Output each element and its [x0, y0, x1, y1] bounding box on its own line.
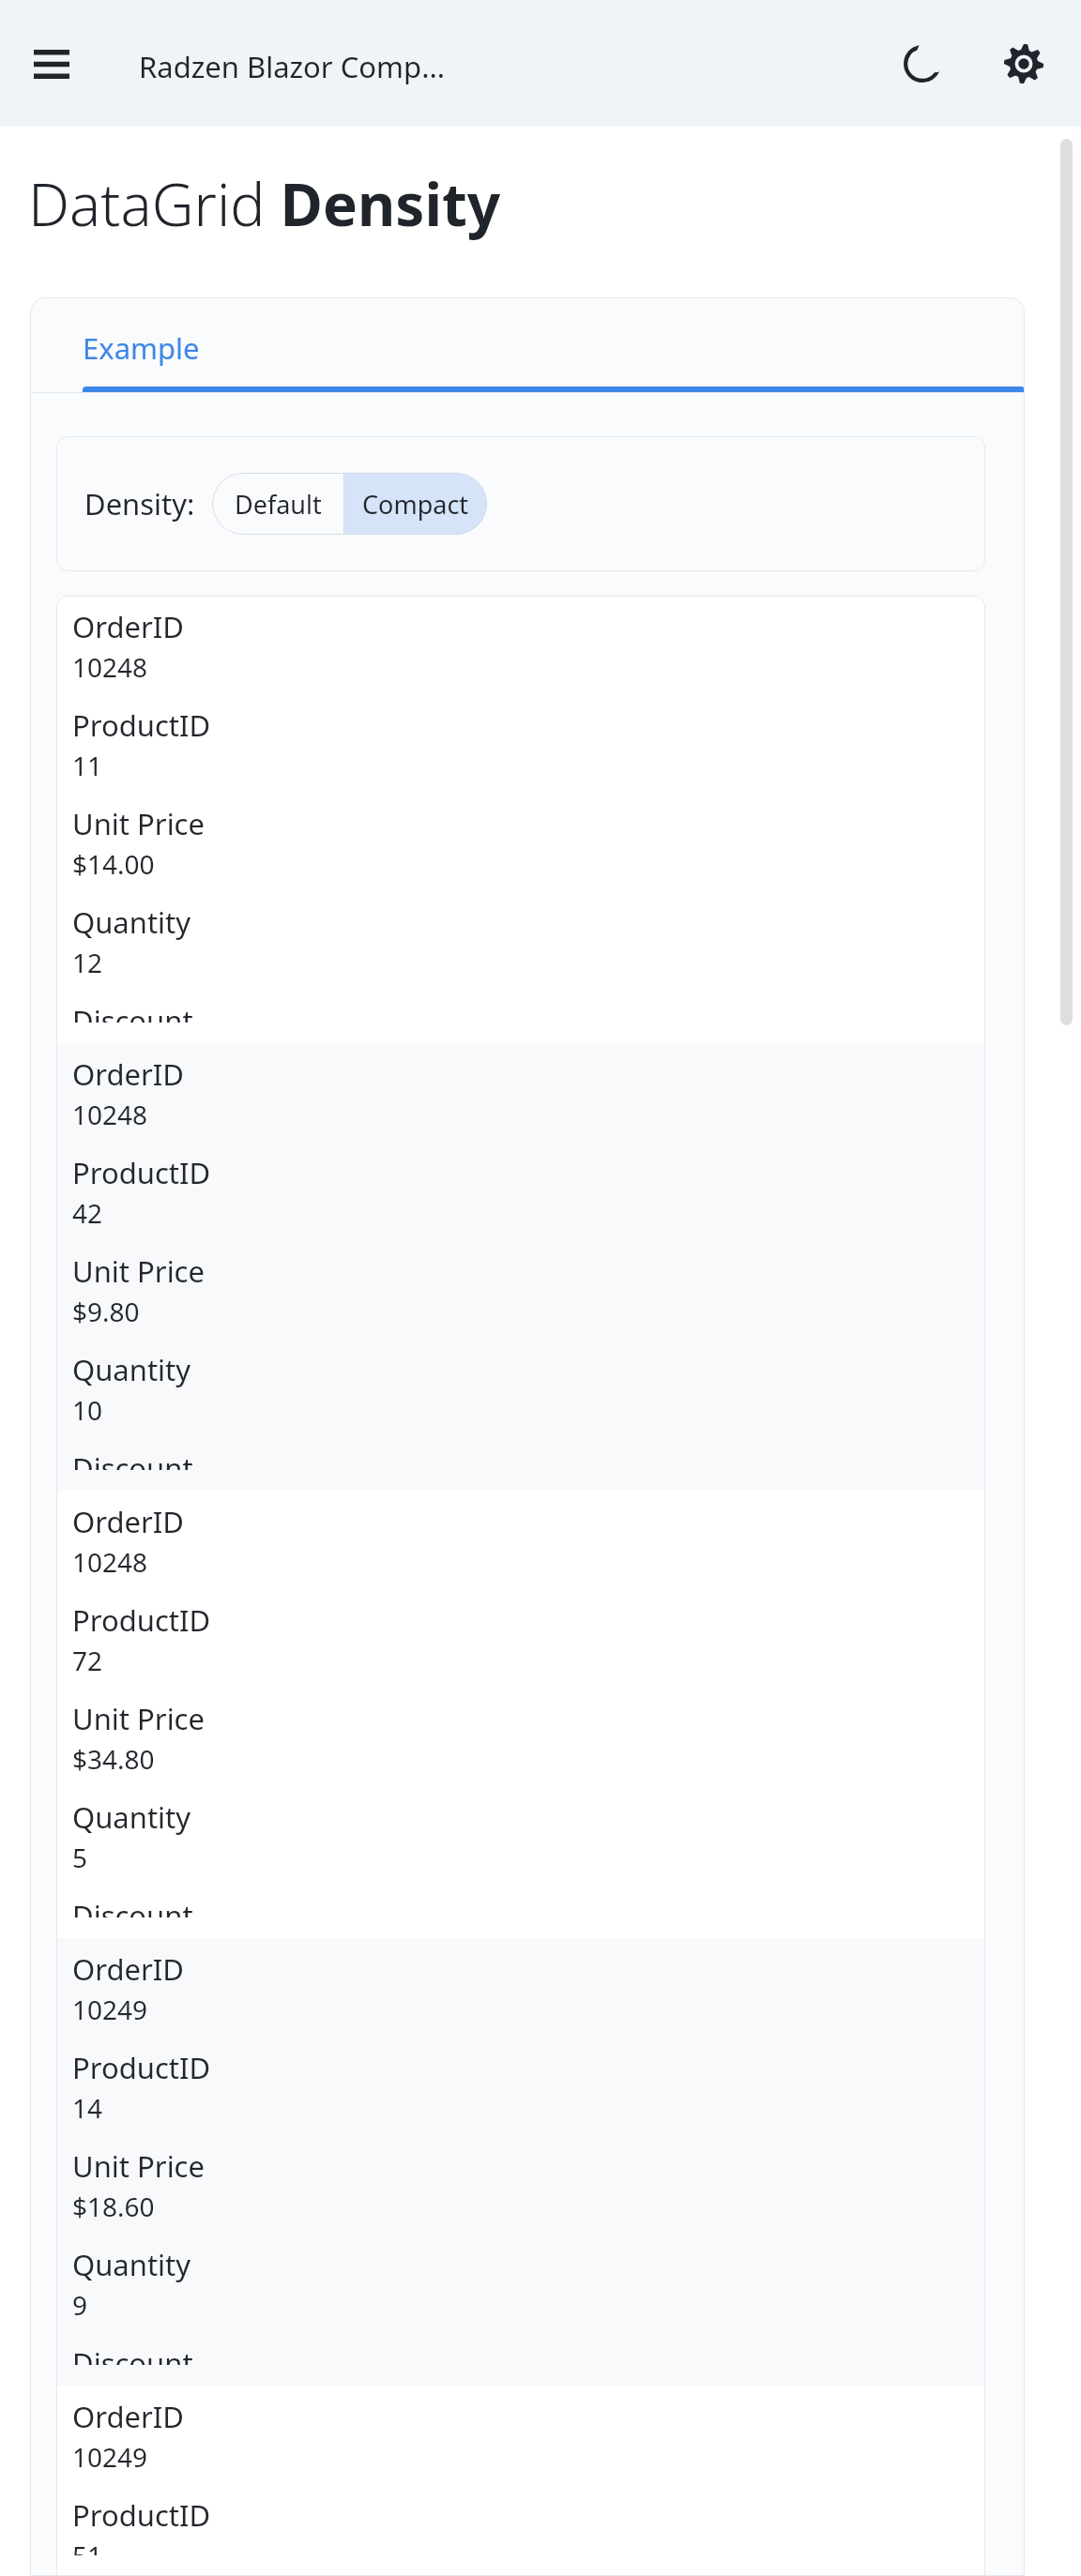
staticText: 5	[72, 1840, 88, 1875]
staticText: Compact	[362, 487, 469, 522]
staticText: Quantity	[72, 1797, 191, 1837]
staticText: $14.00	[72, 846, 155, 882]
staticText: 10248	[72, 1544, 148, 1580]
staticText: Density:	[84, 484, 195, 523]
staticText: Unit Price	[72, 804, 205, 843]
staticText: 10249	[72, 1992, 148, 2027]
button[interactable]: Example	[83, 297, 1025, 393]
staticText: OrderID	[72, 607, 184, 646]
staticText: 14	[72, 2090, 103, 2126]
staticText: Default	[235, 487, 322, 522]
staticText: $34.80	[72, 1741, 155, 1777]
button[interactable]: OrderID	[56, 596, 985, 1043]
button[interactable]: Compact	[344, 473, 487, 535]
staticText: OrderID	[72, 2397, 184, 2436]
button[interactable]: OrderID	[56, 2386, 985, 2576]
staticText: Quantity	[72, 1350, 191, 1389]
staticText: ProductID	[72, 2048, 211, 2087]
staticText: Discount	[72, 1448, 193, 1470]
staticText: 11	[72, 748, 103, 783]
staticText: Unit Price	[72, 1251, 205, 1291]
staticText: Example	[83, 328, 200, 368]
staticText: 10249	[72, 2439, 148, 2475]
button[interactable]: Default	[212, 473, 343, 535]
staticText: 42	[72, 1195, 103, 1231]
staticText: OrderID	[72, 1054, 184, 1094]
staticText: $18.60	[72, 2189, 155, 2224]
button[interactable]: Menu	[19, 31, 84, 97]
staticText: Radzen Blazor Comp...	[139, 47, 446, 86]
button[interactable]: Settings	[991, 31, 1057, 97]
staticText: Discount	[72, 1896, 193, 1917]
staticText: $9.80	[72, 1294, 140, 1329]
staticText: ProductID	[72, 2495, 211, 2535]
staticText: Discount	[72, 1001, 193, 1023]
staticText: ProductID	[72, 1600, 211, 1640]
staticText: OrderID	[72, 1502, 184, 1541]
button[interactable]: OrderID	[56, 1938, 985, 2386]
staticText: 10	[72, 1392, 103, 1428]
staticText: DataGrid Density	[28, 164, 501, 243]
staticText: 10248	[72, 649, 148, 685]
staticText: ProductID	[72, 1153, 211, 1192]
staticText: ProductID	[72, 705, 211, 745]
button[interactable]: Toggle dark mode	[890, 31, 955, 97]
staticText: OrderID	[72, 1949, 184, 1989]
staticText: Unit Price	[72, 2146, 205, 2186]
staticText: 9	[72, 2287, 88, 2323]
staticText: 51	[72, 2538, 103, 2555]
staticText: 10248	[72, 1097, 148, 1132]
staticText: Unit Price	[72, 1699, 205, 1738]
staticText: Discount	[72, 2343, 193, 2365]
staticText: Quantity	[72, 2245, 191, 2284]
button[interactable]: OrderID	[56, 1491, 985, 1938]
staticText: 72	[72, 1643, 103, 1678]
button[interactable]: OrderID	[56, 1043, 985, 1491]
staticText: Quantity	[72, 902, 191, 942]
staticText: 12	[72, 945, 103, 980]
